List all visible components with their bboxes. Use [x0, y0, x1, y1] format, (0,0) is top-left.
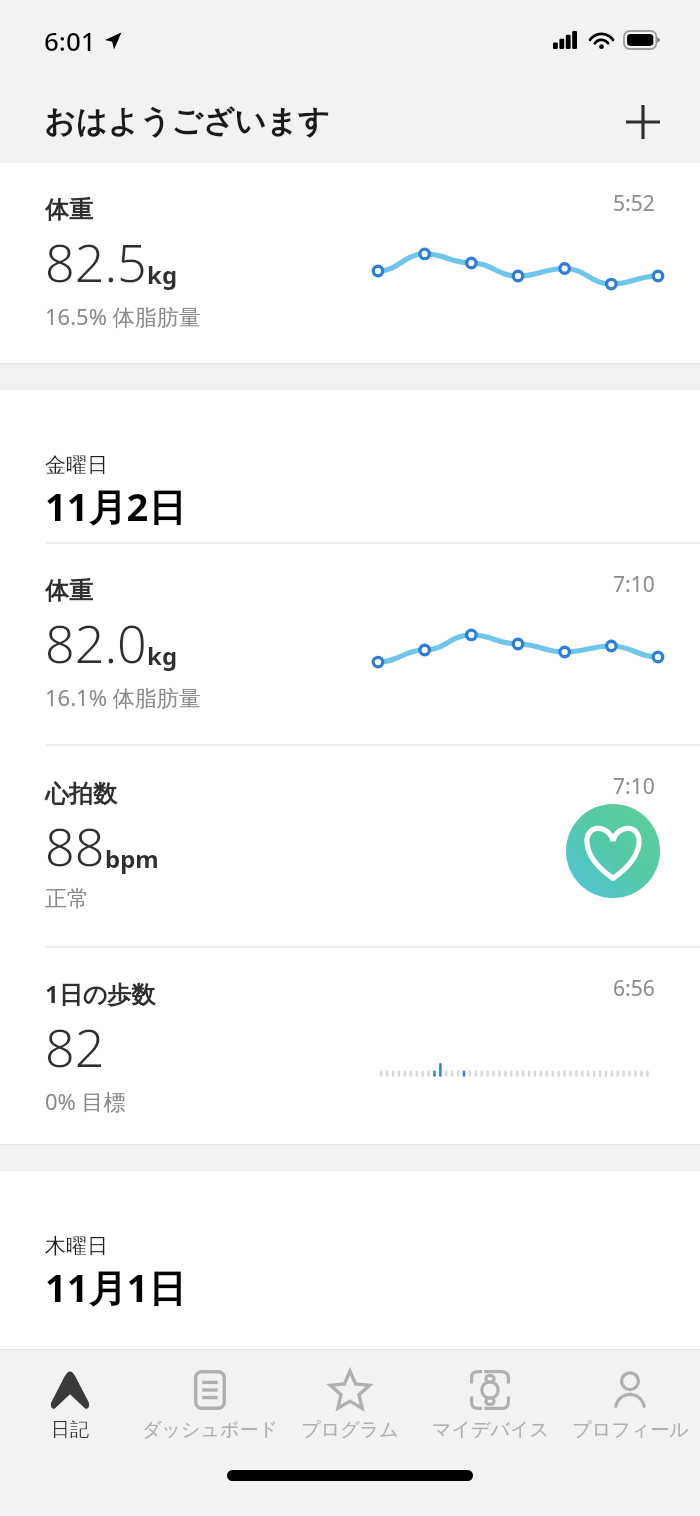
staticText: 心拍数	[45, 779, 117, 809]
staticText: 7:10	[613, 772, 655, 801]
staticText: 82	[45, 1011, 105, 1082]
staticText: 82.5	[45, 226, 147, 297]
staticText: 体重	[45, 576, 93, 606]
button[interactable]: プロフィール	[560, 1350, 700, 1458]
staticText: kg	[147, 258, 178, 291]
staticText: 正常	[45, 885, 89, 913]
button[interactable]: 体重	[0, 542, 700, 744]
button[interactable]: ダッシュボード	[140, 1350, 280, 1458]
staticText: 6:56	[613, 974, 655, 1003]
staticText: 7:10	[613, 570, 655, 599]
button[interactable]: マイデバイス	[420, 1350, 560, 1458]
staticText: 11月2日	[45, 480, 187, 532]
button[interactable]: Add	[614, 93, 672, 151]
staticText: 0% 目標	[45, 1086, 126, 1116]
staticText: bpm	[105, 842, 159, 875]
staticText: 82.0	[45, 607, 147, 678]
button[interactable]: 体重	[0, 163, 700, 363]
button[interactable]: 1日の歩数	[0, 946, 700, 1144]
button[interactable]: 日記	[0, 1350, 140, 1458]
staticText: 体重	[45, 195, 93, 225]
staticText: 5:52	[613, 189, 655, 218]
staticText: ダッシュボード	[142, 1418, 278, 1442]
staticText: プロフィール	[572, 1418, 689, 1442]
staticText: 日記	[51, 1418, 89, 1442]
button[interactable]: プログラム	[280, 1350, 420, 1458]
staticText: 1日の歩数	[45, 977, 156, 1010]
staticText: 11月1日	[45, 1261, 187, 1313]
staticText: 16.1% 体脂肪量	[45, 682, 201, 712]
staticText: 金曜日	[45, 452, 108, 478]
staticText: 16.5% 体脂肪量	[45, 301, 201, 331]
staticText: kg	[147, 639, 178, 672]
staticText: おはようございます	[44, 102, 330, 141]
staticText: 88	[45, 810, 105, 881]
staticText: プログラム	[301, 1418, 399, 1442]
staticText: 6:01	[44, 23, 96, 58]
staticText: マイデバイス	[432, 1418, 549, 1442]
button[interactable]: 心拍数	[0, 744, 700, 946]
staticText: 木曜日	[45, 1233, 108, 1259]
